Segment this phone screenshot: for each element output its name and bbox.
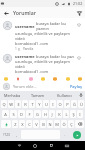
staticText: C	[28, 122, 31, 127]
staticText: Kullanıcı	[57, 93, 72, 98]
staticText: W	[9, 102, 13, 107]
button[interactable]: Kullanıcı	[51, 91, 77, 99]
staticText: .	[64, 132, 65, 137]
button[interactable]: H	[42, 110, 48, 118]
button[interactable]: X	[19, 120, 25, 128]
button[interactable]: B	[40, 120, 46, 128]
staticText: 1 g	[15, 47, 20, 51]
staticText: N	[48, 122, 52, 127]
button[interactable]: Ö	[61, 120, 67, 128]
button[interactable]: I	[77, 110, 83, 118]
staticText: buraya kadar bu yazının	[36, 21, 75, 31]
button[interactable]: N	[47, 120, 53, 128]
button[interactable]: Yorum ekle...	[13, 84, 70, 89]
button[interactable]: W	[8, 100, 14, 108]
button[interactable]: Merhaba	[0, 91, 25, 99]
button[interactable]: C	[26, 120, 32, 128]
button[interactable]: A	[2, 110, 9, 118]
staticText: U	[45, 102, 48, 107]
staticText: V	[35, 122, 38, 127]
button[interactable]: username	[0, 18, 85, 51]
button[interactable]: username	[0, 51, 85, 75]
staticText: uzunlugu, etkinlik ve paylaşım videó	[15, 31, 75, 41]
button[interactable]: O	[57, 100, 63, 108]
button[interactable]: Emoji 1	[15, 76, 20, 81]
staticText: Tamam	[31, 93, 45, 98]
button[interactable]: I	[50, 100, 56, 108]
staticText: Q	[2, 102, 6, 107]
staticText: Yorum ekle...	[13, 84, 37, 89]
button[interactable]: P	[64, 100, 70, 108]
button[interactable]: Emoji 2	[28, 76, 33, 81]
staticText: G	[36, 112, 39, 117]
button[interactable]: Shift	[1, 120, 11, 128]
button[interactable]: Q	[1, 100, 7, 108]
button[interactable]: R	[22, 100, 28, 108]
staticText: P	[66, 102, 69, 107]
button[interactable]: Z	[12, 120, 18, 128]
button[interactable]: Send	[75, 9, 83, 17]
button[interactable]: K	[56, 110, 62, 118]
staticText: Ö	[62, 122, 66, 127]
button[interactable]: Emoji 4	[52, 76, 57, 81]
button[interactable]: Emoji 0	[3, 76, 8, 81]
button[interactable]: Ç	[68, 120, 74, 128]
staticText: O	[58, 102, 62, 107]
staticText: Merhaba	[4, 93, 21, 98]
button[interactable]: Ü	[78, 100, 84, 108]
button[interactable]: S	[10, 110, 17, 118]
button[interactable]: T	[29, 100, 35, 108]
button[interactable]: G	[34, 110, 41, 118]
staticText: 21:02	[73, 1, 83, 6]
button[interactable]: Emoji 3	[40, 76, 45, 81]
button[interactable]: Voice input	[77, 91, 85, 99]
button[interactable]: V	[33, 120, 39, 128]
button[interactable]: J	[49, 110, 55, 118]
staticText: D	[20, 112, 23, 117]
button[interactable]: ,	[13, 130, 20, 139]
staticText: A	[4, 112, 7, 117]
button[interactable]: F	[26, 110, 33, 118]
button[interactable]: Y	[36, 100, 42, 108]
button[interactable]: Ş	[70, 110, 76, 118]
staticText: T	[31, 102, 34, 107]
button[interactable]: Tamam	[25, 91, 51, 99]
button[interactable]: U	[43, 100, 49, 108]
staticText: B	[42, 122, 45, 127]
button[interactable]: Backspace	[75, 120, 84, 128]
button[interactable]: Emoji 6	[77, 76, 82, 81]
button[interactable]: Like	[75, 21, 82, 28]
button[interactable]: ?123	[1, 130, 12, 139]
button[interactable]: Paylaş	[70, 84, 82, 89]
button[interactable]: Ğ	[71, 100, 77, 108]
staticText: S	[12, 112, 15, 117]
button[interactable]: D	[18, 110, 25, 118]
staticText: I	[79, 112, 81, 117]
staticText: R	[24, 102, 27, 107]
staticText: E	[17, 102, 20, 107]
button[interactable]: Back	[11, 141, 27, 150]
staticText: K	[58, 112, 61, 117]
button[interactable]: Emoji 5	[65, 76, 70, 81]
button[interactable]: Yanıtla	[23, 47, 34, 51]
button[interactable]: Like	[75, 54, 82, 61]
button[interactable]: Keyboard	[59, 141, 75, 150]
staticText: Yanıtla	[23, 47, 34, 51]
staticText: username	[15, 54, 35, 59]
staticText: F	[28, 112, 31, 117]
staticText: username	[15, 24, 35, 29]
staticText: Ü	[80, 102, 83, 107]
button[interactable]: Recents	[43, 141, 59, 150]
staticText: ,	[16, 132, 17, 137]
button[interactable]: Home	[27, 141, 43, 150]
staticText: uzunlugu, etkinlik ve paylaşım videó	[15, 59, 75, 69]
staticText: Z	[14, 122, 17, 127]
button[interactable]: L	[63, 110, 69, 118]
button[interactable]: M	[54, 120, 60, 128]
button[interactable]: Send	[69, 130, 84, 139]
staticText: Y	[38, 102, 41, 107]
button[interactable]: Back	[2, 9, 10, 17]
button[interactable]: E	[15, 100, 21, 108]
